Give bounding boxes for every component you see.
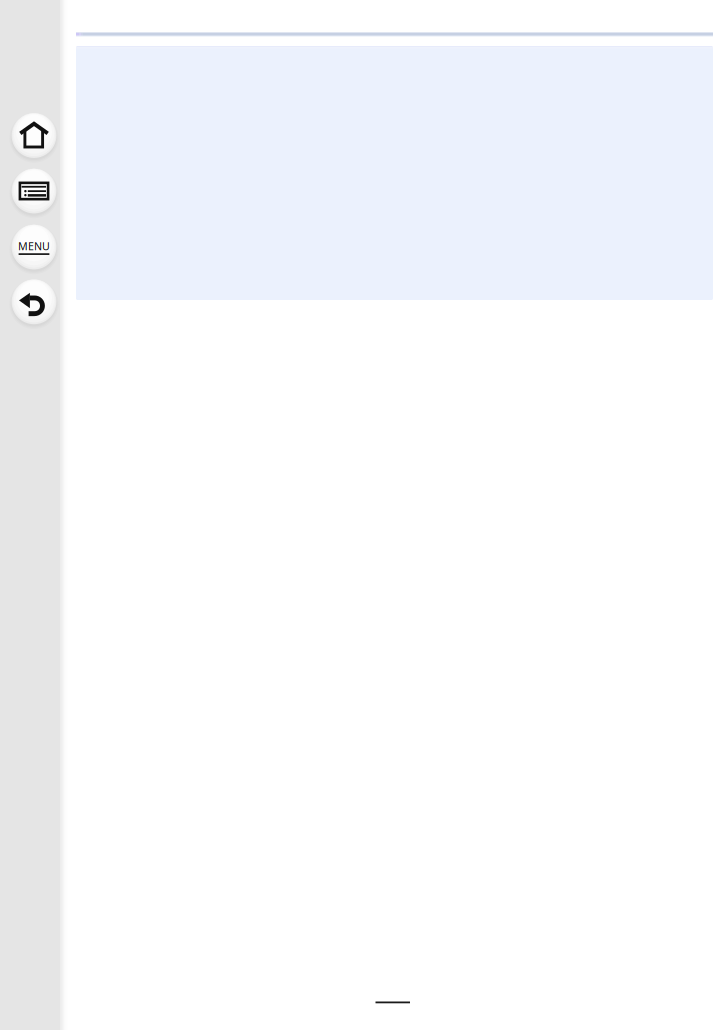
button[interactable]: Back xyxy=(8,275,60,328)
button[interactable]: Home xyxy=(8,109,60,162)
button[interactable]: Contents xyxy=(8,165,60,217)
button[interactable]: Menu xyxy=(8,221,60,273)
staticText: MENU xyxy=(18,239,50,253)
